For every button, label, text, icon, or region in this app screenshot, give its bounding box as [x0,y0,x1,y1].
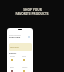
staticText: Honey [10,55,15,57]
staticText: Fresh picks [10,46,19,48]
button[interactable]: Olive [21,55,32,62]
button[interactable]: Honey [9,55,20,62]
staticText: Olive [22,55,26,57]
button[interactable]: Fresh picks [9,43,32,51]
staticText: Popular [9,52,17,55]
staticText: Good morning [9,34,21,36]
staticText: FAVORITE PRODUCTS [15,12,49,16]
staticText: Shop now [9,36,21,39]
button[interactable]: Lemon [21,66,32,72]
staticText: Berry [10,66,15,68]
staticText: Lemon [22,66,28,68]
button[interactable]: Berry [9,66,20,72]
staticText: SHOP YOUR [23,8,42,12]
